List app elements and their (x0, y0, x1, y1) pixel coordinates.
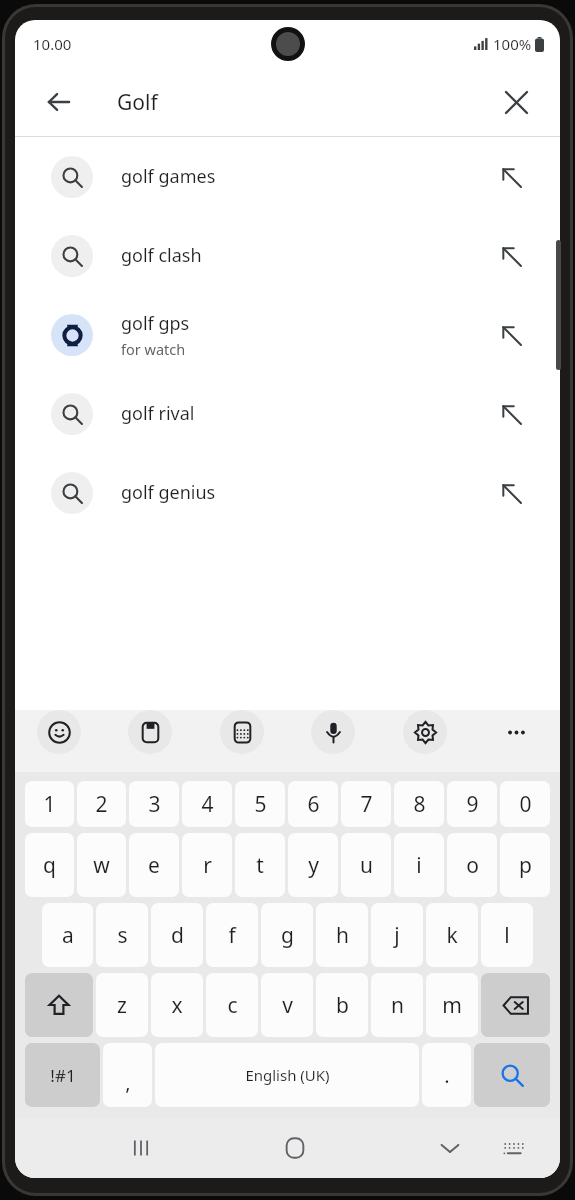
staticText: f (228, 921, 236, 950)
staticText: 5 (254, 790, 267, 819)
button[interactable]: Insert golf gps (492, 316, 530, 354)
button[interactable]: English (UK) (155, 1043, 419, 1107)
button[interactable]: 7 (341, 781, 391, 827)
button[interactable]: 1 (25, 781, 74, 827)
staticText: 2 (95, 790, 108, 819)
button[interactable]: , (103, 1043, 152, 1107)
staticText: 100% (493, 34, 532, 54)
button[interactable]: o (447, 833, 497, 897)
button[interactable]: r (182, 833, 232, 897)
button[interactable]: x (151, 973, 203, 1037)
staticText: q (43, 851, 56, 880)
button[interactable]: j (371, 903, 423, 967)
staticText: z (117, 991, 127, 1020)
button[interactable]: Back (37, 80, 81, 124)
button[interactable]: shift (25, 973, 93, 1037)
staticText: u (360, 851, 373, 880)
button[interactable]: t (235, 833, 285, 897)
button[interactable]: More options (494, 710, 538, 754)
button[interactable]: 4 (182, 781, 232, 827)
button[interactable]: i (394, 833, 444, 897)
staticText: m (442, 991, 462, 1020)
button[interactable]: u (341, 833, 391, 897)
staticText: y (308, 851, 319, 880)
staticText: r (203, 851, 212, 880)
staticText: s (117, 921, 128, 950)
button[interactable]: q (25, 833, 74, 897)
button[interactable]: m (426, 973, 478, 1037)
staticText: i (416, 851, 422, 880)
button[interactable]: c (206, 973, 258, 1037)
button[interactable]: 0 (500, 781, 550, 827)
button[interactable]: e (129, 833, 179, 897)
button[interactable]: Text editing (220, 710, 264, 754)
button[interactable]: h (316, 903, 368, 967)
staticText: , (125, 1069, 131, 1096)
staticText: g (281, 921, 294, 950)
button[interactable]: Emoji (37, 710, 81, 754)
button[interactable]: k (426, 903, 478, 967)
button[interactable]: 9 (447, 781, 497, 827)
button[interactable]: Voice input (311, 710, 355, 754)
button[interactable]: z (96, 973, 148, 1037)
staticText: 8 (413, 790, 426, 819)
button[interactable]: . (422, 1043, 471, 1107)
staticText: !#1 (50, 1064, 76, 1087)
button[interactable]: b (316, 973, 368, 1037)
staticText: p (519, 851, 532, 880)
staticText: 3 (148, 790, 161, 819)
staticText: golf genius (121, 480, 216, 505)
button[interactable]: Insert golf genius (492, 474, 530, 512)
button[interactable]: 6 (288, 781, 338, 827)
button[interactable]: l (481, 903, 533, 967)
staticText: a (62, 921, 74, 950)
button[interactable]: Settings (403, 710, 447, 754)
staticText: 0 (519, 790, 532, 819)
button[interactable]: f (206, 903, 258, 967)
staticText: 1 (43, 790, 56, 819)
button[interactable]: Clipboard (128, 710, 172, 754)
button[interactable]: y (288, 833, 338, 897)
staticText: 10.00 (33, 34, 72, 54)
button[interactable]: search (474, 1043, 550, 1107)
button[interactable]: s (96, 903, 148, 967)
button[interactable]: golf clash (15, 216, 560, 295)
staticText: d (171, 921, 184, 950)
staticText: golf gps (121, 311, 190, 336)
button[interactable]: p (500, 833, 550, 897)
button[interactable]: Home (271, 1124, 319, 1172)
button[interactable]: n (371, 973, 423, 1037)
button[interactable]: Hide keyboard (426, 1124, 474, 1172)
button[interactable]: Insert golf clash (492, 237, 530, 275)
staticText: for watch (121, 339, 186, 359)
button[interactable]: golf genius (15, 453, 560, 532)
button[interactable]: 3 (129, 781, 179, 827)
staticText: k (446, 921, 458, 950)
button[interactable]: 5 (235, 781, 285, 827)
button[interactable]: 2 (77, 781, 126, 827)
button[interactable]: w (77, 833, 126, 897)
button[interactable]: !#1 (25, 1043, 100, 1107)
button[interactable]: Clear (494, 80, 538, 124)
button[interactable]: Insert golf games (492, 158, 530, 196)
button[interactable]: v (261, 973, 313, 1037)
button[interactable]: Insert golf rival (492, 395, 530, 433)
staticText: n (391, 991, 404, 1020)
button[interactable]: golf games (15, 137, 560, 216)
staticText: golf rival (121, 401, 195, 426)
button[interactable]: a (42, 903, 93, 967)
button[interactable]: Recents (117, 1124, 165, 1172)
button[interactable]: Switch keyboard (490, 1124, 538, 1172)
staticText: x (171, 991, 183, 1020)
staticText: l (504, 921, 510, 950)
button[interactable]: d (151, 903, 203, 967)
button[interactable]: 8 (394, 781, 444, 827)
button[interactable]: g (261, 903, 313, 967)
button[interactable]: golf gps (15, 295, 560, 374)
staticText: e (148, 851, 160, 880)
staticText: b (336, 991, 349, 1020)
button[interactable]: golf rival (15, 374, 560, 453)
staticText: 7 (360, 790, 373, 819)
button[interactable]: backspace (481, 973, 550, 1037)
staticText: v (282, 991, 293, 1020)
